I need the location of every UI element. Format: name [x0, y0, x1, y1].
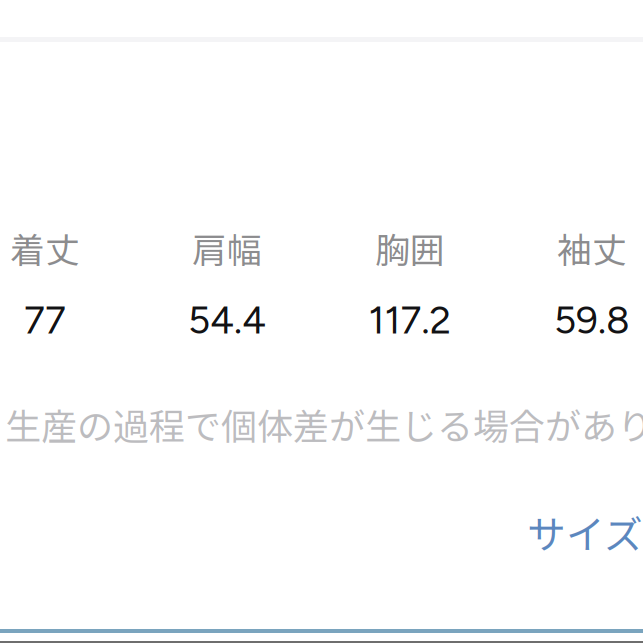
staticText: 54.4 — [188, 297, 266, 343]
staticText: 肩幅 — [192, 223, 262, 273]
staticText: 生産の過程で個体差が生じる場合があり — [5, 398, 643, 450]
staticText: サイズ詳細 — [527, 504, 643, 560]
staticText: 77 — [24, 297, 66, 343]
staticText: 59.8 — [554, 297, 630, 343]
staticText: 117.2 — [368, 297, 451, 343]
button[interactable]: サイズ詳細 — [527, 504, 643, 560]
staticText: 袖丈 — [557, 223, 627, 273]
staticText: 着丈 — [10, 223, 80, 273]
staticText: 胸囲 — [375, 223, 445, 273]
